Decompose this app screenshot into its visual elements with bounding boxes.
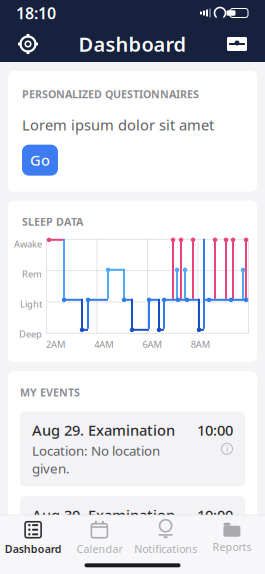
staticText: Aug 29. Examination: [32, 420, 175, 440]
staticText: 10:00: [197, 505, 233, 525]
staticText: 10:00: [197, 420, 233, 440]
staticText: 6AM: [142, 338, 161, 350]
staticText: SLEEP DATA: [22, 215, 83, 229]
button[interactable]: Reports: [199, 517, 265, 554]
staticText: i: [226, 443, 228, 455]
staticText: Dashboard: [5, 542, 62, 556]
staticText: Notifications: [134, 542, 197, 556]
staticText: Light: [20, 298, 42, 310]
staticText: Rem: [22, 268, 42, 280]
staticText: Aug 30. Examination: [32, 505, 175, 525]
staticText: 8AM: [191, 338, 210, 350]
staticText: MY EVENTS: [20, 385, 80, 399]
button[interactable]: Dashboard: [0, 515, 66, 556]
staticText: 4AM: [94, 338, 113, 350]
button[interactable]: Calendar: [66, 515, 132, 556]
button[interactable]: Settings: [8, 26, 48, 62]
button[interactable]: Aug 29. Examination: [20, 411, 245, 486]
staticText: Location: No location given.: [32, 442, 160, 477]
staticText: Awake: [14, 238, 42, 250]
staticText: Lorem ipsum dolor sit amet: [22, 115, 214, 135]
staticText: Go: [30, 150, 50, 170]
staticText: 2AM: [46, 338, 65, 350]
staticText: Location: No location given.: [32, 527, 160, 562]
staticText: PERSONALIZED QUESTIONNAIRES: [22, 87, 199, 101]
staticText: 18:10: [16, 2, 56, 24]
button[interactable]: Notifications: [132, 515, 199, 556]
button[interactable]: Aug 30. Examination: [20, 496, 245, 571]
staticText: i: [226, 527, 228, 540]
staticText: Reports: [212, 540, 251, 554]
staticText: Calendar: [76, 542, 122, 556]
button[interactable]: Messages: [217, 26, 257, 62]
button[interactable]: Go: [22, 145, 58, 176]
staticText: Deep: [19, 328, 42, 340]
staticText: Dashboard: [78, 31, 186, 57]
